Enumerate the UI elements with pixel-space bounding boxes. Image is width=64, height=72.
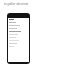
staticText: to gather what mat bbox=[4, 2, 29, 6]
